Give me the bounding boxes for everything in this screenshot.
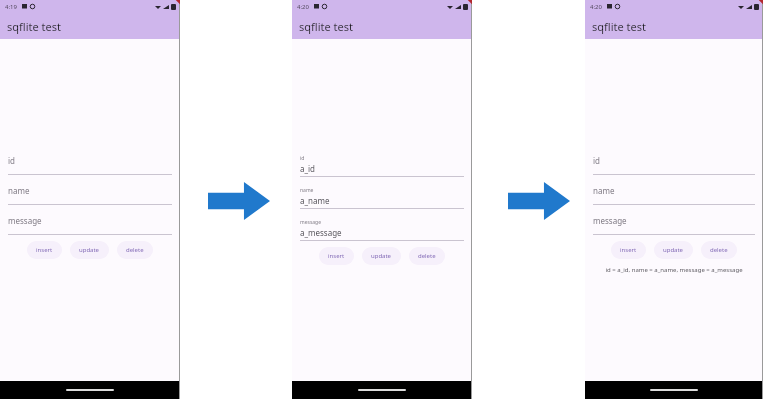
staticText: insert bbox=[36, 246, 53, 254]
button[interactable]: update bbox=[654, 241, 693, 259]
staticText: delete bbox=[710, 246, 728, 254]
button[interactable]: update bbox=[362, 247, 401, 265]
staticText: insert bbox=[620, 246, 637, 254]
staticText: 4:19 bbox=[5, 3, 17, 11]
staticText: sqflite test bbox=[592, 19, 646, 34]
staticText: name bbox=[300, 187, 314, 194]
button[interactable]: delete bbox=[409, 247, 445, 265]
staticText: 4:20 bbox=[297, 3, 309, 11]
staticText: delete bbox=[126, 246, 144, 254]
staticText: insert bbox=[328, 252, 345, 260]
staticText: update bbox=[79, 246, 100, 254]
staticText: sqflite test bbox=[299, 19, 353, 34]
staticText: update bbox=[371, 252, 392, 260]
staticText: message bbox=[300, 219, 321, 226]
staticText: update bbox=[663, 246, 684, 254]
button[interactable]: delete bbox=[701, 241, 737, 259]
staticText: delete bbox=[418, 252, 436, 260]
staticText: a_id bbox=[300, 163, 316, 174]
button[interactable]: insert bbox=[27, 241, 62, 259]
staticText: id bbox=[593, 155, 600, 166]
staticText: message bbox=[8, 215, 42, 226]
button[interactable]: update bbox=[70, 241, 109, 259]
button[interactable]: insert bbox=[611, 241, 646, 259]
other: Next step bbox=[508, 182, 570, 220]
button[interactable]: insert bbox=[319, 247, 354, 265]
staticText: 4:20 bbox=[590, 3, 602, 11]
staticText: a_name bbox=[300, 195, 330, 206]
staticText: id bbox=[8, 155, 15, 166]
staticText: a_message bbox=[300, 227, 342, 238]
staticText: name bbox=[593, 185, 615, 196]
staticText: id bbox=[300, 155, 305, 162]
button[interactable]: delete bbox=[117, 241, 153, 259]
staticText: message bbox=[593, 215, 627, 226]
other: Next step bbox=[208, 182, 270, 220]
staticText: sqflite test bbox=[7, 19, 61, 34]
staticText: name bbox=[8, 185, 30, 196]
staticText: id = a_id, name = a_name, message = a_me… bbox=[593, 266, 755, 274]
